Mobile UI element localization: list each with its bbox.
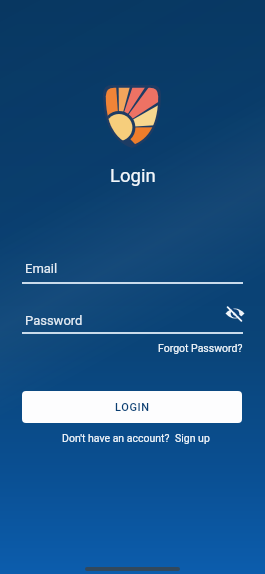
staticText: LOGIN — [115, 401, 150, 414]
staticText: Forgot Password? — [158, 342, 243, 354]
button[interactable]: Password — [22, 300, 243, 334]
button[interactable] — [225, 304, 245, 323]
button[interactable]: LOGIN — [22, 391, 242, 423]
button[interactable]: Email — [22, 250, 243, 284]
staticText: Email — [25, 261, 58, 276]
button[interactable]: Forgot Password? — [158, 342, 243, 354]
staticText: Password — [25, 313, 83, 328]
button[interactable]: Sign up — [175, 432, 210, 444]
staticText: Login — [110, 165, 156, 187]
staticText: Sign up — [175, 432, 210, 444]
staticText: Don't have an account? — [62, 432, 170, 444]
